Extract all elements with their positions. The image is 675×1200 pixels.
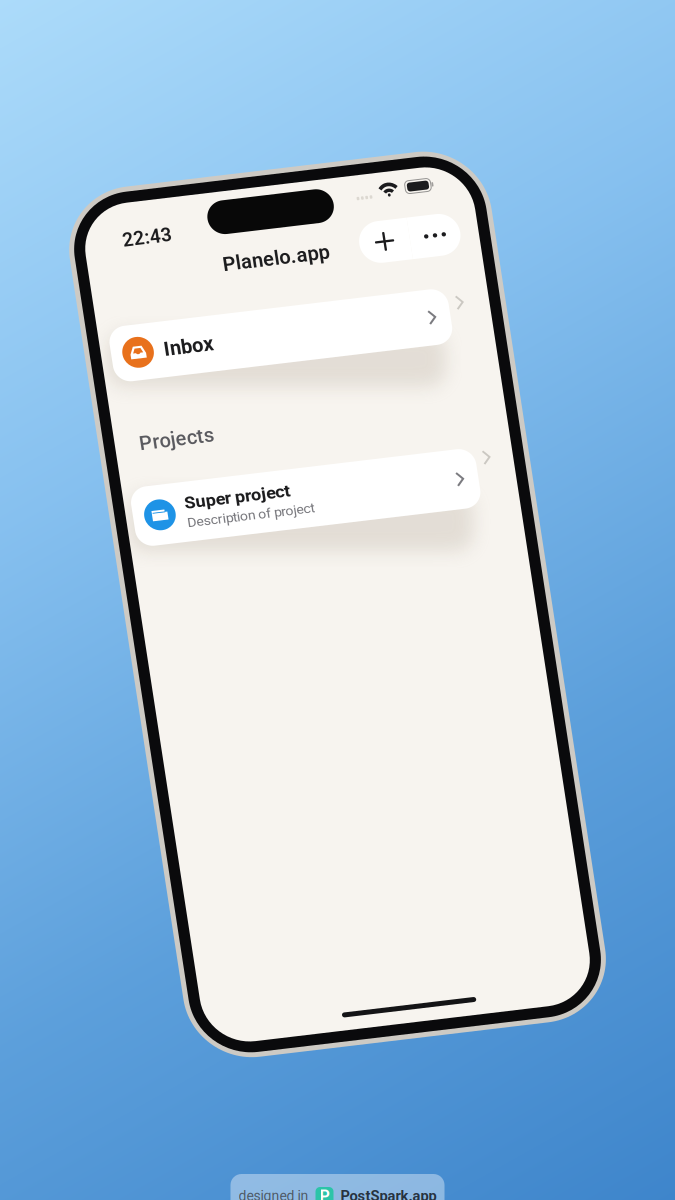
staticText: designed in [238, 1188, 308, 1200]
button[interactable]: Inbox [154, 298, 490, 354]
staticText: PostSpark.app [340, 1187, 436, 1200]
button[interactable]: More options [462, 224, 512, 266]
staticText: Super project [203, 471, 308, 491]
staticText: P [319, 1187, 329, 1200]
button[interactable]: New item [412, 224, 462, 266]
button[interactable]: Super project [151, 460, 493, 520]
staticText: Description of project [203, 493, 329, 509]
staticText: 22:43 [182, 202, 231, 224]
staticText: Planelo.app [276, 237, 382, 260]
